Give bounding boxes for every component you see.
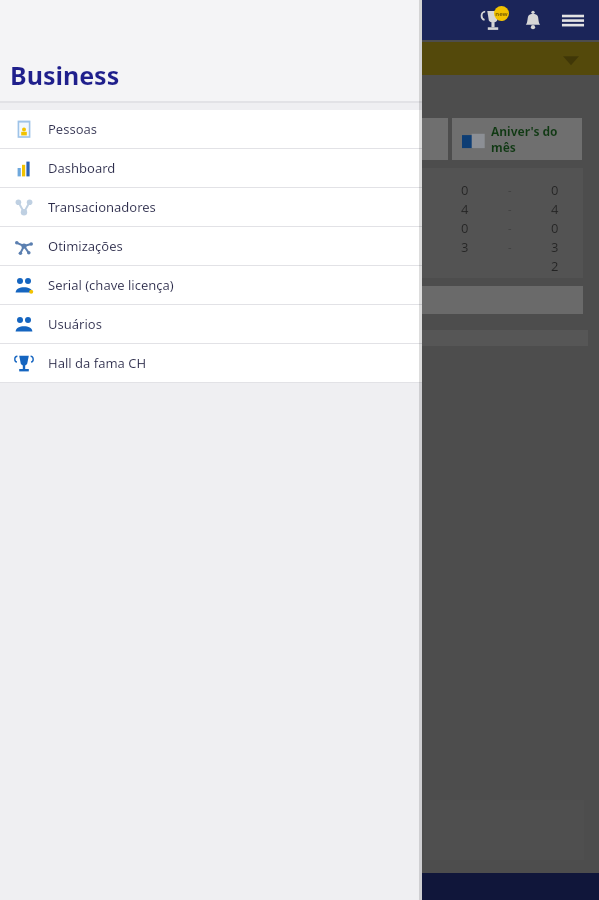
staticText: 2: [551, 257, 559, 275]
staticText: 3: [551, 238, 559, 256]
staticText: 0: [551, 219, 559, 237]
button[interactable]: Hall da fama CH: [0, 344, 422, 382]
staticText: 0: [461, 181, 469, 199]
staticText: 3: [461, 238, 469, 256]
staticText: Dashboard: [48, 159, 116, 177]
staticText: Serial (chave licença): [48, 276, 174, 294]
button[interactable]: Usuários: [0, 305, 422, 343]
button[interactable]: Otimizações: [0, 227, 422, 265]
button[interactable]: Menu: [555, 2, 591, 38]
staticText: new: [495, 10, 508, 18]
staticText: 4: [551, 200, 559, 218]
staticText: Hall da fama CH: [48, 354, 147, 372]
button[interactable]: Dashboard: [0, 149, 422, 187]
button[interactable]: Pessoas: [0, 110, 422, 148]
staticText: -: [508, 201, 512, 216]
staticText: 0: [551, 181, 559, 199]
staticText: Otimizações: [48, 237, 123, 255]
button[interactable]: Ranking: [475, 2, 511, 38]
staticText: 0: [461, 219, 469, 237]
staticText: -: [508, 239, 512, 254]
button[interactable]: Serial (chave licença): [0, 266, 422, 304]
staticText: -: [508, 220, 512, 235]
staticText: 4: [461, 200, 469, 218]
staticText: Pessoas: [48, 120, 98, 138]
staticText: Business: [10, 58, 120, 92]
button[interactable]: Aniver's do mês: [452, 118, 582, 160]
button[interactable]: Transacionadores: [0, 188, 422, 226]
staticText: Aniver's do mês: [491, 123, 582, 155]
staticText: Usuários: [48, 315, 102, 333]
staticText: -: [508, 182, 512, 197]
staticText: Transacionadores: [48, 198, 156, 216]
button[interactable]: Notifications: [515, 2, 551, 38]
